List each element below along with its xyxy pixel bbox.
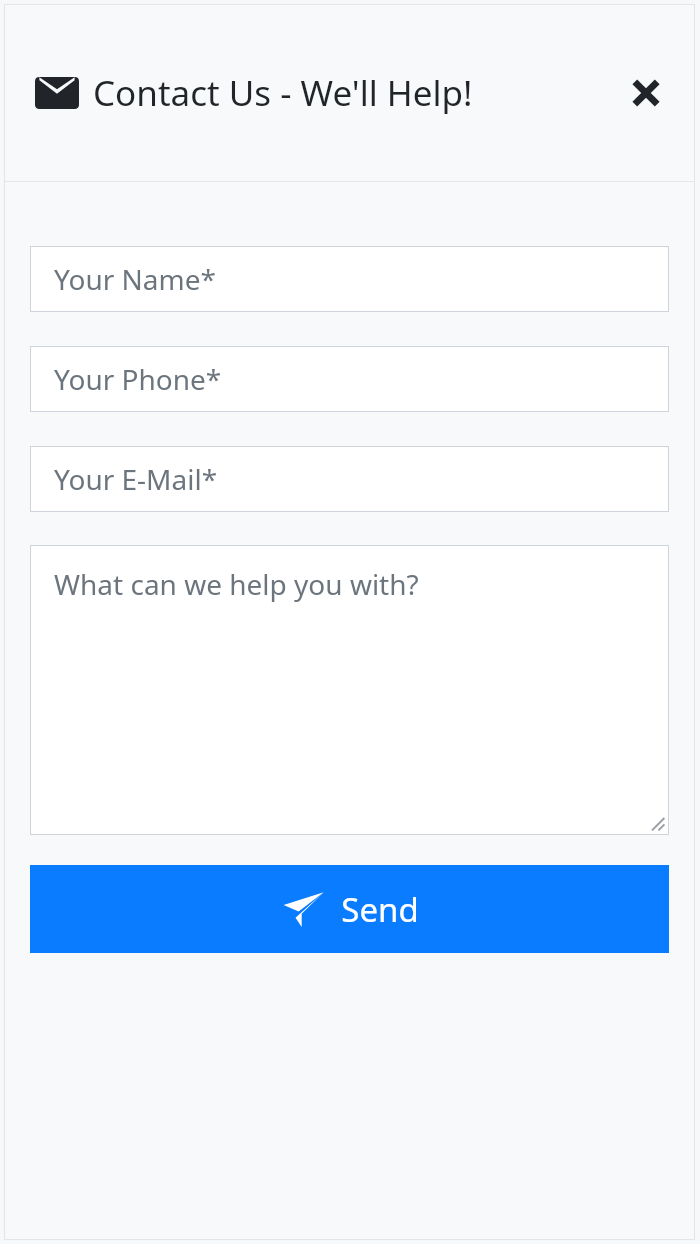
button[interactable]: Your Name* [30, 246, 669, 312]
button[interactable]: What can we help you with? [30, 545, 669, 835]
staticText: Your Phone* [54, 360, 222, 398]
button[interactable]: Your Phone* [30, 346, 669, 412]
staticText: What can we help you with? [54, 565, 419, 603]
button[interactable]: Close [623, 70, 669, 116]
staticText: Send [341, 887, 419, 932]
staticText: Contact Us - We'll Help! [93, 69, 473, 117]
button[interactable]: Send [30, 865, 669, 953]
staticText: Your E-Mail* [54, 460, 218, 498]
staticText: Your Name* [54, 260, 216, 298]
button[interactable]: Your E-Mail* [30, 446, 669, 512]
